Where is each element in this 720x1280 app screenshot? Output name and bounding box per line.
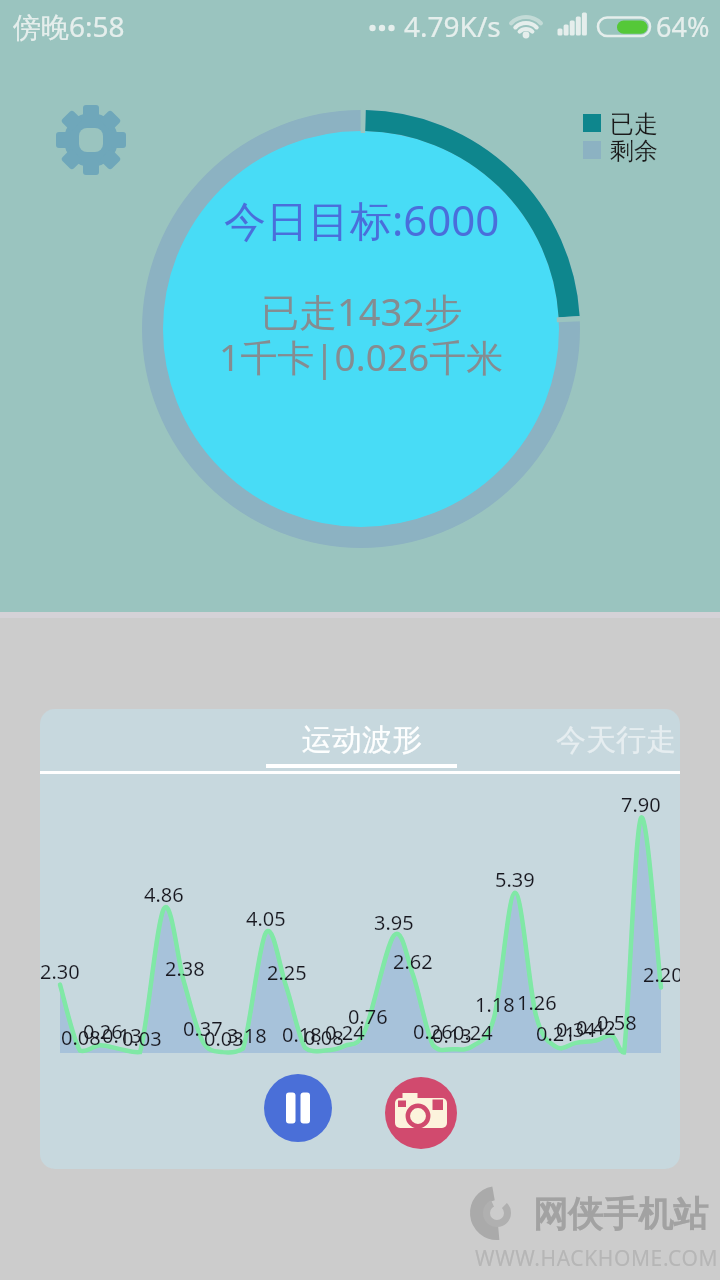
staticText: 已走1432步 [261,285,462,337]
button[interactable] [385,1077,457,1149]
button[interactable]: 运动波形 [202,709,522,771]
staticText: 0.08 [304,1024,344,1051]
staticText: 2.62 [393,948,433,975]
staticText: 网侠手机站 [533,1192,708,1236]
staticText: 5.39 [495,866,535,893]
staticText: 运动波形 [302,721,422,759]
staticText: 0.13 [432,1022,472,1049]
staticText: 0.58 [597,1009,637,1036]
staticText: 0.03 [122,1025,162,1052]
button[interactable]: 今天行走 [536,709,680,771]
staticText: 傍晚6:58 [13,7,125,45]
staticText: 64% [656,8,710,45]
staticText: 0.37 [183,1015,223,1042]
staticText: 2.25 [267,959,307,986]
staticText: 7.90 [621,791,661,818]
staticText: 4.86 [144,881,184,908]
button[interactable] [264,1074,332,1142]
staticText: 0.13 [102,1022,142,1049]
staticText: 0.34 [556,1016,596,1043]
staticText: 1.18 [475,991,515,1018]
staticText: 2.38 [165,955,205,982]
staticText: 1.26 [517,989,557,1016]
staticText: WWW.HACKHOME.COM [475,1244,719,1273]
staticText: 0.18 [282,1021,322,1048]
staticText: 0.24 [325,1019,365,1046]
staticText: 2.30 [40,958,80,985]
staticText: 0.26 [83,1018,123,1045]
staticText: 3.18 [227,1022,267,1049]
staticText: 0.24 [453,1019,493,1046]
staticText: 4.05 [246,905,286,932]
staticText: 今天行走 [556,721,676,759]
staticText: 0.42 [576,1014,616,1041]
button[interactable] [55,104,127,176]
staticText: 剩余 [610,136,658,166]
staticText: 2.20 [643,961,680,988]
staticText: 4.79K/s [404,7,501,45]
staticText: 1千卡|0.026千米 [219,331,504,382]
staticText: 已走 [610,109,658,139]
staticText: 0.08 [61,1024,101,1051]
staticText: 3.95 [374,909,414,936]
staticText: 0.03 [204,1025,244,1052]
staticText: 0.21 [536,1020,576,1047]
staticText: 0.26 [413,1018,453,1045]
staticText: 0.76 [348,1003,388,1030]
staticText: 今日目标:6000 [224,191,500,248]
